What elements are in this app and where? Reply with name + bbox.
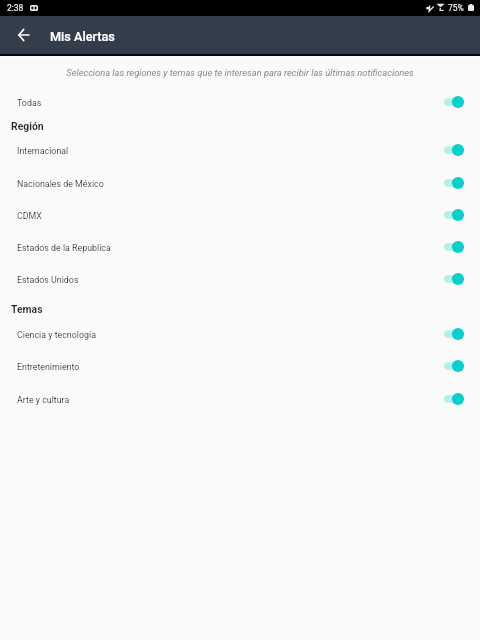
button[interactable]: Back <box>0 16 42 54</box>
button[interactable]: Nacionales de México <box>0 168 480 200</box>
staticText: Estados de la Republica <box>17 243 111 253</box>
staticText: Estados Unidos <box>17 275 79 285</box>
button[interactable]: Ciencia y tecnología <box>0 319 480 351</box>
button[interactable]: Entretenimiento <box>0 351 480 383</box>
staticText: Entretenimiento <box>17 362 80 372</box>
staticText: CDMX <box>17 211 42 221</box>
staticText: Internacional <box>17 146 69 156</box>
staticText: 75% <box>448 3 464 13</box>
button[interactable]: Activar Estados Unidos <box>441 272 468 286</box>
button[interactable]: Estados Unidos <box>0 264 480 296</box>
button[interactable]: Estados de la Republica <box>0 232 480 264</box>
staticText: Arte y cultura <box>17 395 70 405</box>
staticText: Nacionales de México <box>17 179 104 189</box>
button[interactable]: Arte y cultura <box>0 384 480 416</box>
button[interactable]: Todas <box>0 87 480 119</box>
staticText: Todas <box>17 98 42 108</box>
staticText: Temas <box>11 303 43 315</box>
button[interactable]: Activar Entretenimiento <box>441 359 468 373</box>
button[interactable]: Activar Internacional <box>441 143 468 157</box>
button[interactable]: Activar Estados de la Republica <box>441 240 468 254</box>
button[interactable]: Activar Nacionales de México <box>441 176 468 190</box>
button[interactable]: Activar Arte y cultura <box>441 392 468 406</box>
staticText: Mis Alertas <box>50 29 115 44</box>
button[interactable]: Internacional <box>0 135 480 167</box>
button[interactable]: Activar Ciencia y tecnología <box>441 327 468 341</box>
button[interactable]: Activar Todas <box>441 95 468 109</box>
staticText: Región <box>11 120 44 132</box>
button[interactable]: CDMX <box>0 200 480 232</box>
staticText: Ciencia y tecnología <box>17 330 96 340</box>
staticText: 2:38 <box>7 3 24 13</box>
staticText: Selecciona las regiones y temas que te i… <box>66 67 414 78</box>
button[interactable]: Activar CDMX <box>441 208 468 222</box>
